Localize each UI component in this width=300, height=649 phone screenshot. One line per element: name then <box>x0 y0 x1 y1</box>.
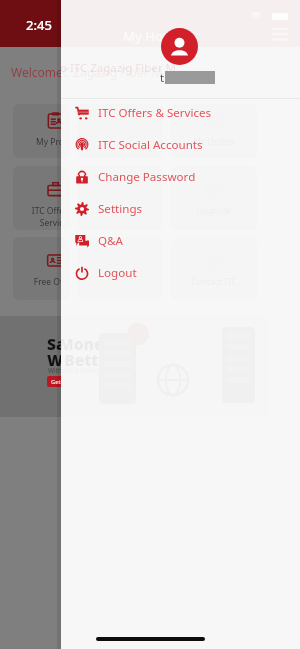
staticText: Change Password <box>98 169 196 185</box>
staticText: Welcome To ITC Zagazig Fiber M <box>61 64 163 80</box>
staticText: With ITC Connected Devices Program <box>48 366 162 375</box>
staticText: 2:45 <box>26 16 52 34</box>
staticText: ITC Offers & <box>20 205 92 217</box>
staticText: My Profile <box>26 136 86 148</box>
button[interactable] <box>13 166 99 230</box>
staticText: Settings <box>98 201 143 217</box>
staticText: Logout <box>98 265 137 281</box>
button[interactable] <box>13 104 99 158</box>
button[interactable]: Profile <box>161 28 198 65</box>
staticText: My Home <box>123 27 183 45</box>
staticText: Work Better <box>47 349 146 370</box>
button[interactable] <box>77 104 163 158</box>
staticText: Q&A <box>98 233 123 249</box>
staticText: Welcome To ITC Zagazig Fiber M <box>11 64 193 80</box>
button[interactable] <box>107 237 193 300</box>
staticText: My Orders <box>184 136 244 148</box>
button[interactable] <box>201 104 287 158</box>
button[interactable] <box>107 104 193 158</box>
button[interactable]: Settings <box>61 193 300 225</box>
button[interactable] <box>171 166 257 230</box>
button[interactable] <box>13 237 99 300</box>
staticText: ITC Offers & Services <box>98 105 212 121</box>
button[interactable] <box>107 166 193 230</box>
staticText: o ITC Zagazig Fiber M <box>61 60 176 76</box>
button[interactable]: Open menu <box>268 24 290 44</box>
staticText: ITC Social Accounts <box>98 137 203 153</box>
staticText: Save Money <box>61 333 113 354</box>
button[interactable]: ITC Offers & Services <box>61 97 300 129</box>
button[interactable]: ITC Social Accounts <box>61 129 300 161</box>
button[interactable]: Logout <box>61 257 300 289</box>
button[interactable]: Get Offer <box>47 376 81 387</box>
button[interactable] <box>77 237 163 300</box>
staticText: Save Money <box>47 333 143 354</box>
button[interactable]: Change Password <box>61 161 300 193</box>
staticText: Free Offers <box>26 276 86 288</box>
staticText: Work Better <box>61 349 116 370</box>
staticText: Get Offer <box>51 378 78 386</box>
staticText: Services <box>28 217 84 229</box>
button[interactable] <box>171 104 257 158</box>
button[interactable]: Q&A <box>61 225 300 257</box>
staticText: t <box>160 70 165 86</box>
button[interactable] <box>77 166 163 230</box>
